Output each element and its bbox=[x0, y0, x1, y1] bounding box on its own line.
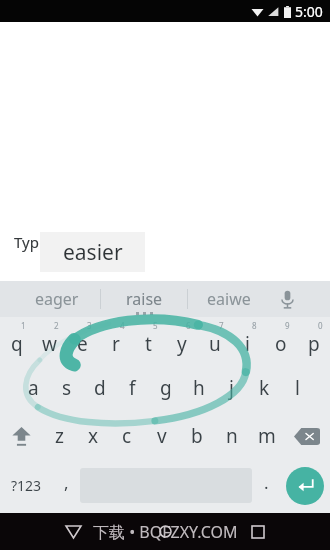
button[interactable]: f bbox=[116, 364, 149, 412]
button[interactable]: 1 bbox=[0, 317, 33, 364]
button[interactable]: a bbox=[16, 364, 50, 412]
button[interactable]: j bbox=[215, 364, 248, 412]
button[interactable]: . bbox=[252, 460, 280, 511]
staticText: g bbox=[160, 375, 172, 401]
button[interactable]: Recents bbox=[238, 513, 278, 550]
button[interactable]: z bbox=[42, 412, 76, 460]
staticText: 2 bbox=[54, 320, 59, 331]
button[interactable]: Back bbox=[53, 513, 93, 550]
button[interactable]: m bbox=[249, 412, 284, 460]
button[interactable]: , bbox=[52, 460, 80, 511]
button[interactable]: 2 bbox=[33, 317, 66, 364]
button[interactable]: eager bbox=[14, 281, 100, 317]
button[interactable]: easier bbox=[40, 232, 145, 272]
staticText: 下载 • BQFZXY.COM bbox=[93, 521, 238, 543]
button[interactable]: g bbox=[149, 364, 182, 412]
staticText: 1 bbox=[21, 320, 26, 331]
staticText: z bbox=[55, 423, 64, 449]
button[interactable]: 9 bbox=[264, 317, 297, 364]
staticText: 7 bbox=[219, 320, 224, 331]
staticText: o bbox=[275, 331, 287, 357]
staticText: 6 bbox=[186, 320, 191, 331]
staticText: p bbox=[308, 331, 320, 357]
staticText: eaiwe bbox=[207, 288, 251, 310]
staticText: q bbox=[11, 331, 23, 357]
button[interactable]: b bbox=[179, 412, 214, 460]
staticText: 0 bbox=[318, 320, 323, 331]
button[interactable]: v bbox=[144, 412, 179, 460]
button[interactable]: d bbox=[83, 364, 116, 412]
button[interactable]: 8 bbox=[231, 317, 264, 364]
button[interactable]: 7 bbox=[198, 317, 231, 364]
button[interactable]: Home bbox=[145, 513, 185, 550]
staticText: eager bbox=[35, 288, 79, 310]
button[interactable]: h bbox=[182, 364, 215, 412]
staticText: r bbox=[112, 331, 120, 357]
button[interactable]: 4 bbox=[99, 317, 132, 364]
button[interactable]: 5 bbox=[132, 317, 165, 364]
staticText: u bbox=[209, 331, 221, 357]
staticText: x bbox=[88, 423, 99, 449]
staticText: w bbox=[42, 331, 57, 357]
button[interactable]: c bbox=[110, 412, 144, 460]
staticText: e bbox=[77, 331, 88, 357]
button[interactable]: 3 bbox=[66, 317, 99, 364]
staticText: . bbox=[264, 471, 269, 494]
button[interactable]: n bbox=[214, 412, 249, 460]
staticText: i bbox=[245, 331, 250, 357]
staticText: d bbox=[94, 375, 106, 401]
button[interactable]: eaiwe bbox=[188, 281, 270, 317]
staticText: b bbox=[191, 423, 203, 449]
staticText: k bbox=[259, 375, 270, 401]
button[interactable]: Backspace bbox=[284, 412, 330, 460]
staticText: m bbox=[258, 423, 276, 449]
staticText: v bbox=[157, 423, 167, 449]
staticText: , bbox=[64, 471, 69, 494]
button[interactable]: x bbox=[76, 412, 110, 460]
staticText: c bbox=[122, 423, 132, 449]
button[interactable]: s bbox=[50, 364, 83, 412]
staticText: 9 bbox=[285, 320, 290, 331]
button[interactable]: 6 bbox=[165, 317, 198, 364]
staticText: n bbox=[226, 423, 238, 449]
staticText: easier bbox=[63, 238, 123, 267]
staticText: a bbox=[28, 375, 39, 401]
staticText: 5 bbox=[153, 320, 158, 331]
staticText: y bbox=[177, 331, 187, 357]
button[interactable]: Enter bbox=[286, 467, 324, 505]
staticText: 4 bbox=[120, 320, 125, 331]
staticText: Typ bbox=[14, 232, 39, 252]
staticText: l bbox=[295, 375, 300, 401]
button[interactable]: l bbox=[281, 364, 314, 412]
button[interactable]: ?123 bbox=[0, 460, 52, 511]
button[interactable]: k bbox=[248, 364, 281, 412]
staticText: f bbox=[129, 375, 136, 401]
staticText: h bbox=[193, 375, 205, 401]
button[interactable]: 0 bbox=[297, 317, 330, 364]
staticText: ?123 bbox=[11, 476, 42, 495]
staticText: Typing is bbox=[14, 232, 77, 252]
staticText: 8 bbox=[252, 320, 257, 331]
staticText: 3 bbox=[87, 320, 92, 331]
staticText: j bbox=[229, 375, 234, 401]
button[interactable]: Voice input bbox=[270, 281, 304, 317]
button[interactable]: Shift bbox=[0, 412, 42, 460]
button[interactable]: raise bbox=[101, 281, 187, 317]
staticText: s bbox=[62, 375, 72, 401]
staticText: 5:00 bbox=[295, 2, 323, 21]
staticText: raise bbox=[126, 288, 163, 310]
staticText: t bbox=[145, 331, 152, 357]
